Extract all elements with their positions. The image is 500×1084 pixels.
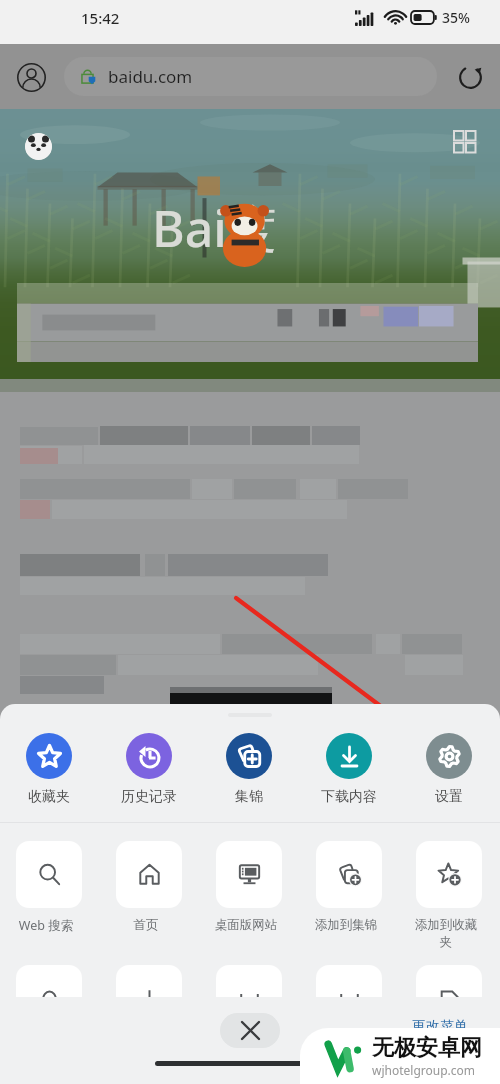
button[interactable]: 更改菜单 bbox=[412, 1018, 468, 1036]
button[interactable]: 桌面版网站 bbox=[216, 841, 282, 933]
button[interactable]: 添加到集锦 bbox=[316, 841, 382, 933]
staticText: 桌面版网站 bbox=[213, 917, 279, 933]
button[interactable]: 收藏夹 bbox=[9, 733, 89, 806]
staticText: 下载内容 bbox=[321, 788, 377, 806]
staticText: 添加到收藏夹 bbox=[413, 917, 479, 949]
staticText: 历史记录 bbox=[121, 788, 177, 806]
staticText: 设置 bbox=[435, 788, 463, 806]
staticText: 收藏夹 bbox=[28, 788, 70, 806]
button[interactable]: Close bbox=[220, 1013, 280, 1048]
button[interactable]: 历史记录 bbox=[109, 733, 189, 806]
button[interactable]: 首页 bbox=[116, 841, 182, 933]
staticText: Bai度 bbox=[152, 194, 277, 262]
button[interactable]: Account bbox=[9, 55, 53, 99]
staticText: baidu.com bbox=[108, 65, 193, 88]
button[interactable]: 下载内容 bbox=[309, 733, 389, 806]
button[interactable]: Profile bbox=[25, 133, 52, 160]
button[interactable]: baidu.com bbox=[64, 57, 437, 96]
staticText: 集锦 bbox=[235, 788, 263, 806]
button[interactable] bbox=[316, 965, 382, 997]
staticText: 15:42 bbox=[81, 8, 120, 28]
staticText: wjhotelgroup.com bbox=[372, 1062, 476, 1078]
button[interactable] bbox=[116, 965, 182, 997]
button[interactable] bbox=[216, 965, 282, 997]
staticText: Web 搜索 bbox=[13, 917, 79, 934]
button[interactable]: Web 搜索 bbox=[16, 841, 82, 934]
staticText: 无极安卓网 bbox=[372, 1034, 482, 1062]
button[interactable]: 集锦 bbox=[209, 733, 289, 806]
button[interactable]: Reload bbox=[448, 55, 492, 99]
staticText: 35% bbox=[442, 8, 470, 27]
button[interactable] bbox=[16, 965, 82, 997]
button[interactable]: Apps bbox=[448, 125, 484, 161]
button[interactable]: 添加到收藏夹 bbox=[416, 841, 482, 949]
button[interactable] bbox=[416, 965, 482, 997]
button[interactable]: 设置 bbox=[409, 733, 489, 806]
staticText: 添加到集锦 bbox=[313, 917, 379, 933]
staticText: 首页 bbox=[113, 917, 179, 933]
